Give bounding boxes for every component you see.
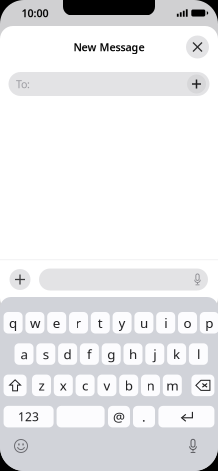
staticText: f (87, 345, 92, 363)
button[interactable]: m (163, 375, 182, 396)
button[interactable]: z (32, 375, 51, 396)
button[interactable]: Dictate (182, 435, 204, 457)
button[interactable]: q (4, 312, 23, 333)
button[interactable]: . (133, 406, 155, 427)
button[interactable]: k (167, 343, 186, 365)
staticText: n (146, 376, 154, 394)
button[interactable]: e (47, 312, 66, 333)
button[interactable]: p (200, 312, 218, 333)
button[interactable]: l (189, 343, 208, 365)
button[interactable]: Emoji (10, 435, 32, 457)
staticText: h (129, 345, 137, 363)
button[interactable]: t (91, 312, 110, 333)
staticText: w (30, 314, 40, 332)
staticText: New Message (73, 40, 144, 54)
staticText: m (166, 376, 178, 394)
button[interactable]: @ (108, 406, 130, 427)
staticText: s (43, 345, 49, 363)
staticText: . (142, 408, 146, 425)
button[interactable]: j (145, 343, 164, 365)
button[interactable]: i (156, 312, 175, 333)
button[interactable]: w (25, 312, 44, 333)
button[interactable]: x (54, 375, 73, 396)
staticText: c (82, 376, 88, 394)
button[interactable]: c (76, 375, 95, 396)
button[interactable]: Close (186, 35, 209, 58)
staticText: 123 (18, 409, 39, 425)
button[interactable]: s (36, 343, 55, 365)
staticText: v (103, 376, 110, 394)
button[interactable]: n (141, 375, 160, 396)
button[interactable]: 123 (4, 406, 54, 427)
staticText: d (64, 345, 72, 363)
staticText: b (125, 376, 133, 394)
button[interactable]: Message field (39, 268, 208, 290)
button[interactable] (4, 375, 27, 396)
staticText: r (75, 314, 81, 332)
staticText: z (38, 376, 44, 394)
staticText: l (197, 345, 200, 363)
staticText: e (53, 314, 61, 332)
staticText: y (119, 314, 126, 332)
button[interactable]: h (123, 343, 142, 365)
staticText: p (205, 314, 213, 332)
button[interactable]: a (14, 343, 33, 365)
button[interactable]: g (102, 343, 121, 365)
button[interactable]: u (134, 312, 153, 333)
button[interactable]: d (58, 343, 77, 365)
button[interactable]: v (97, 375, 116, 396)
button[interactable]: y (113, 312, 132, 333)
button[interactable]: To: (8, 72, 209, 96)
staticText: j (153, 345, 156, 363)
button[interactable] (191, 375, 214, 396)
staticText: g (107, 345, 115, 363)
staticText: To: (16, 77, 30, 91)
staticText: @ (113, 408, 125, 425)
staticText: k (173, 345, 180, 363)
button[interactable]: r (69, 312, 88, 333)
staticText: t (98, 314, 103, 332)
staticText: o (183, 314, 191, 332)
button[interactable] (57, 406, 105, 427)
staticText: i (164, 314, 167, 332)
staticText: u (140, 314, 148, 332)
button[interactable]: Apps (9, 269, 30, 290)
staticText: q (9, 314, 17, 332)
staticText: a (20, 345, 27, 363)
staticText: x (60, 376, 67, 394)
staticText: 10:00 (21, 6, 48, 20)
button[interactable]: f (80, 343, 99, 365)
button[interactable]: b (119, 375, 138, 396)
button[interactable] (158, 406, 214, 427)
button[interactable]: o (178, 312, 197, 333)
